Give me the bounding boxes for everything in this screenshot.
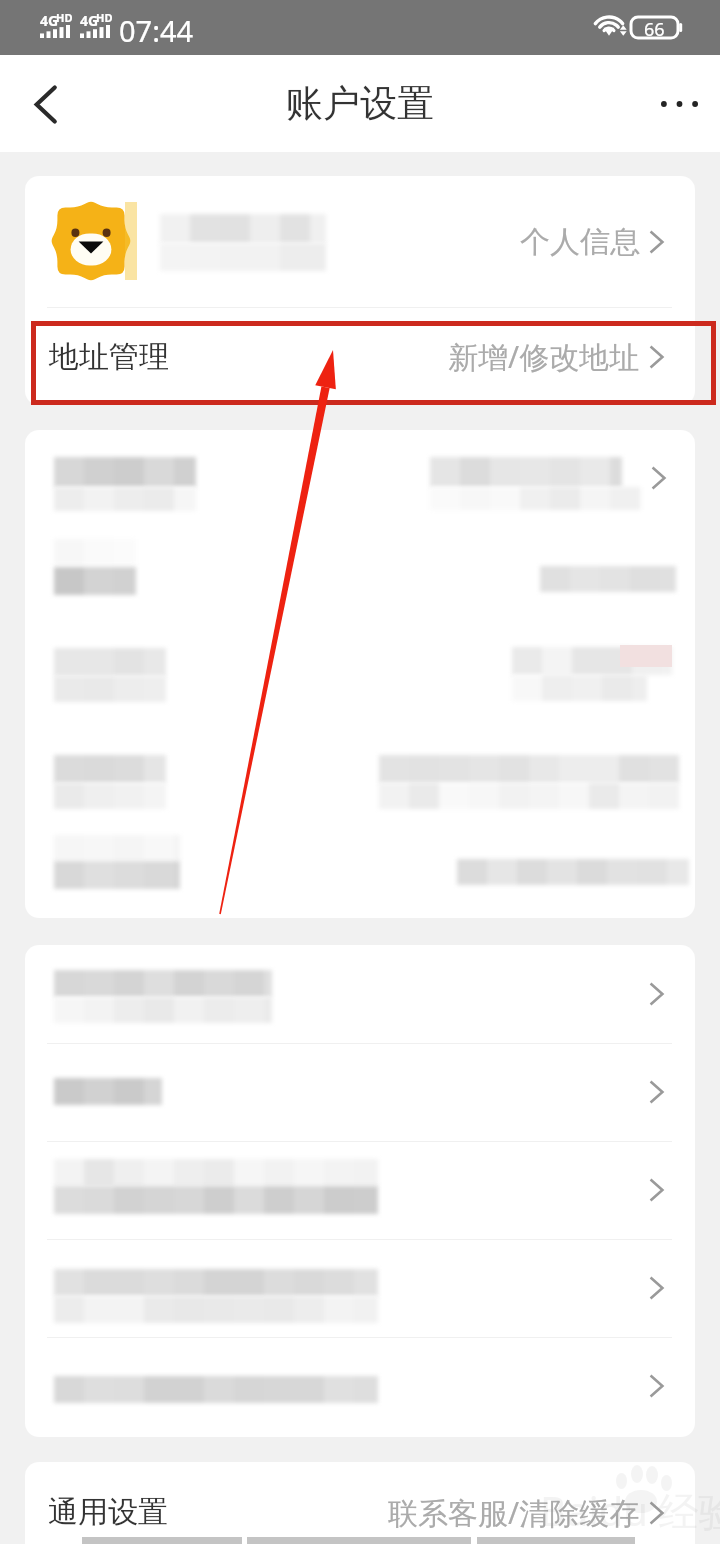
button[interactable]: 个人信息 (25, 176, 695, 307)
button[interactable] (25, 628, 695, 728)
staticText: 新增/修改地址 (448, 336, 640, 377)
button[interactable] (25, 530, 695, 628)
staticText: 联系客服/清除缓存 (388, 1492, 640, 1533)
button[interactable] (25, 1141, 695, 1239)
staticText: 4G (40, 11, 59, 30)
button[interactable] (25, 1337, 695, 1437)
staticText: Baidu 经验 (540, 1483, 720, 1538)
staticText: HD (96, 10, 113, 25)
button[interactable]: Back (12, 71, 78, 137)
button[interactable] (25, 1239, 695, 1337)
staticText: 07:44 (119, 11, 194, 50)
button[interactable]: More options (646, 71, 712, 137)
staticText: 个人信息 (520, 223, 640, 261)
staticText: 地址管理 (49, 338, 169, 376)
button[interactable] (25, 945, 695, 1043)
staticText: 账户设置 (286, 80, 434, 127)
button[interactable] (25, 1043, 695, 1141)
staticText: HD (56, 10, 73, 25)
staticText: 4G (80, 11, 99, 30)
button[interactable]: 地址管理 (25, 308, 695, 405)
button[interactable] (25, 728, 695, 828)
staticText: 通用设置 (48, 1493, 168, 1531)
button[interactable]: 通用设置 (25, 1462, 695, 1544)
button[interactable] (25, 430, 695, 530)
staticText: 66 (644, 17, 665, 38)
button[interactable] (25, 828, 695, 918)
